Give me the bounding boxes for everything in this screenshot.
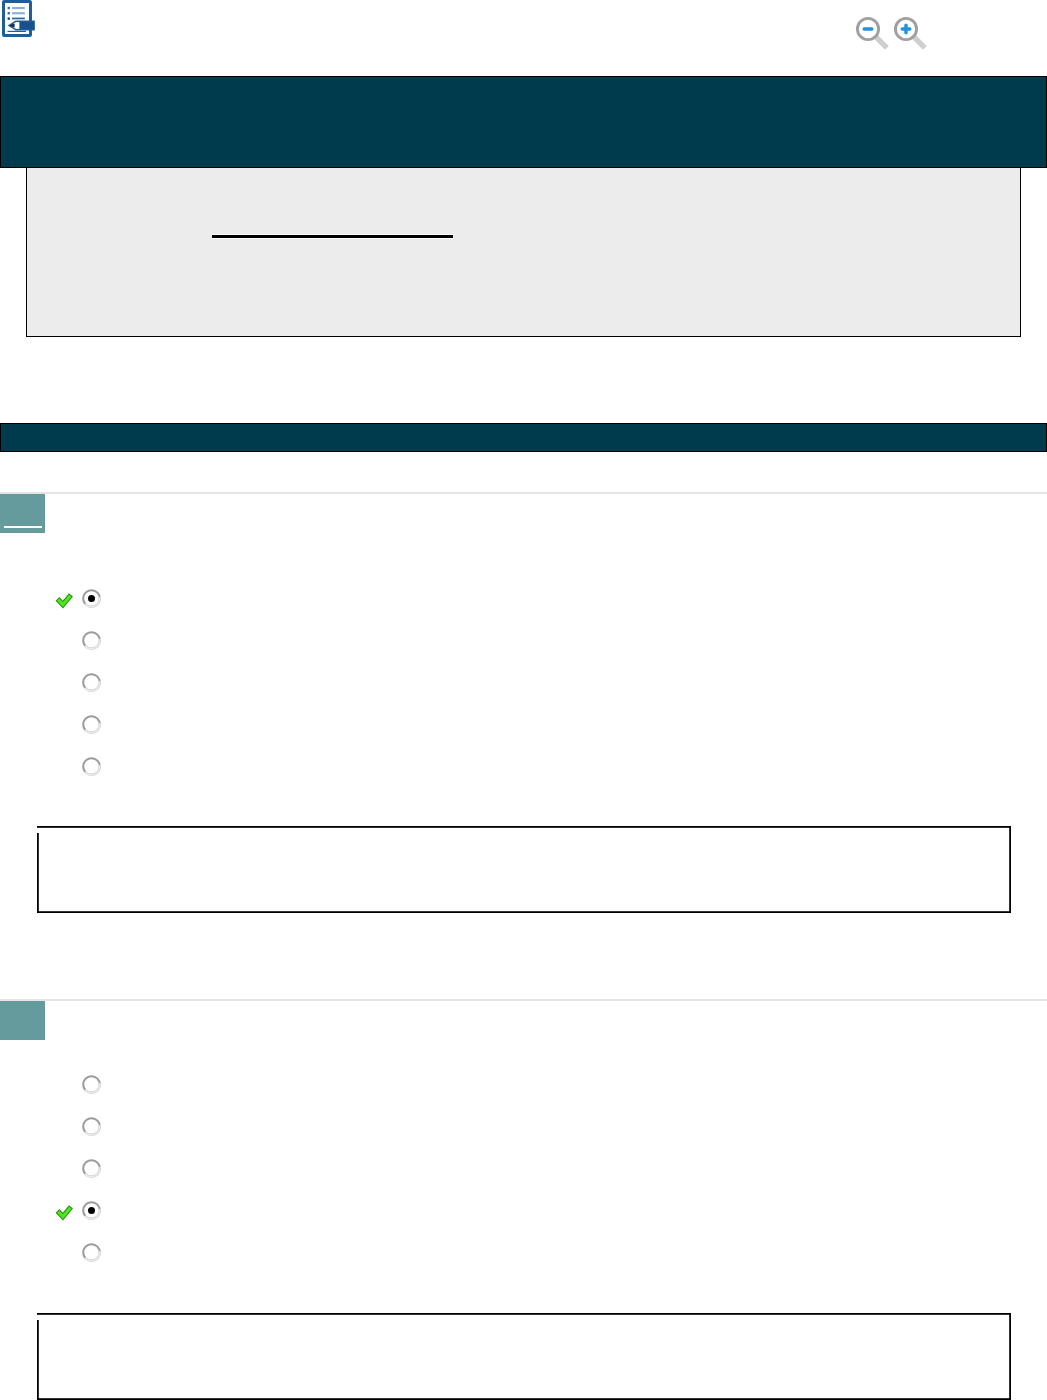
button[interactable] <box>0 1191 1047 1229</box>
button[interactable] <box>0 579 1047 617</box>
button[interactable]: Survey <box>2 0 38 38</box>
button[interactable] <box>0 663 1047 701</box>
button[interactable] <box>0 1233 1047 1271</box>
button[interactable] <box>0 1149 1047 1187</box>
button[interactable] <box>0 747 1047 785</box>
button[interactable] <box>212 234 453 239</box>
button[interactable] <box>0 621 1047 659</box>
button[interactable] <box>0 705 1047 743</box>
button[interactable]: Zoom out <box>855 16 887 48</box>
button[interactable]: Zoom in <box>893 16 925 48</box>
button[interactable] <box>0 1107 1047 1145</box>
button[interactable] <box>0 1065 1047 1103</box>
